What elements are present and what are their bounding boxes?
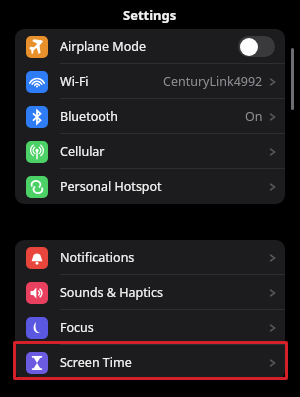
staticText: CenturyLink4992 [163, 73, 263, 90]
staticText: Sounds & Haptics [60, 284, 163, 301]
button[interactable]: Notifications [15, 240, 285, 275]
staticText: Bluetooth [60, 108, 119, 125]
button[interactable]: Focus [15, 310, 285, 345]
staticText: Notifications [60, 249, 135, 266]
button[interactable]: Cellular [15, 134, 285, 169]
button[interactable]: Airplane Mode toggle [238, 36, 275, 57]
staticText: Focus [60, 319, 94, 336]
button[interactable]: Screen Time [15, 345, 285, 380]
staticText: Personal Hotspot [60, 178, 162, 195]
button[interactable]: Sounds & Haptics [15, 275, 285, 310]
button[interactable]: Personal Hotspot [15, 169, 285, 204]
staticText: Airplane Mode [60, 38, 146, 55]
staticText: Wi-Fi [60, 73, 89, 90]
button[interactable]: Wi-Fi [15, 64, 285, 99]
staticText: Screen Time [60, 354, 132, 371]
staticText: On [245, 108, 263, 125]
button[interactable]: Bluetooth [15, 99, 285, 134]
staticText: Cellular [60, 143, 105, 160]
staticText: Settings [123, 6, 177, 24]
button[interactable]: Airplane Mode [15, 29, 285, 64]
